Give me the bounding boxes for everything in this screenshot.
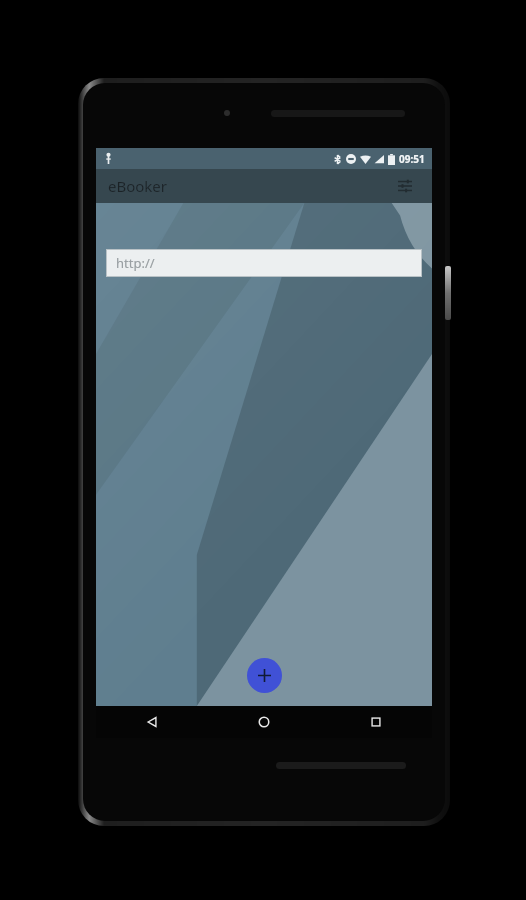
button[interactable]: Settings: [390, 171, 420, 201]
button[interactable]: Back: [96, 706, 208, 738]
staticText: 09:51: [399, 152, 425, 166]
button[interactable]: Home: [208, 706, 320, 738]
staticText: http://: [116, 254, 155, 272]
button[interactable]: Add: [247, 658, 282, 693]
button[interactable]: http://: [107, 250, 421, 276]
staticText: eBooker: [108, 176, 168, 196]
button[interactable]: Recents: [320, 706, 432, 738]
